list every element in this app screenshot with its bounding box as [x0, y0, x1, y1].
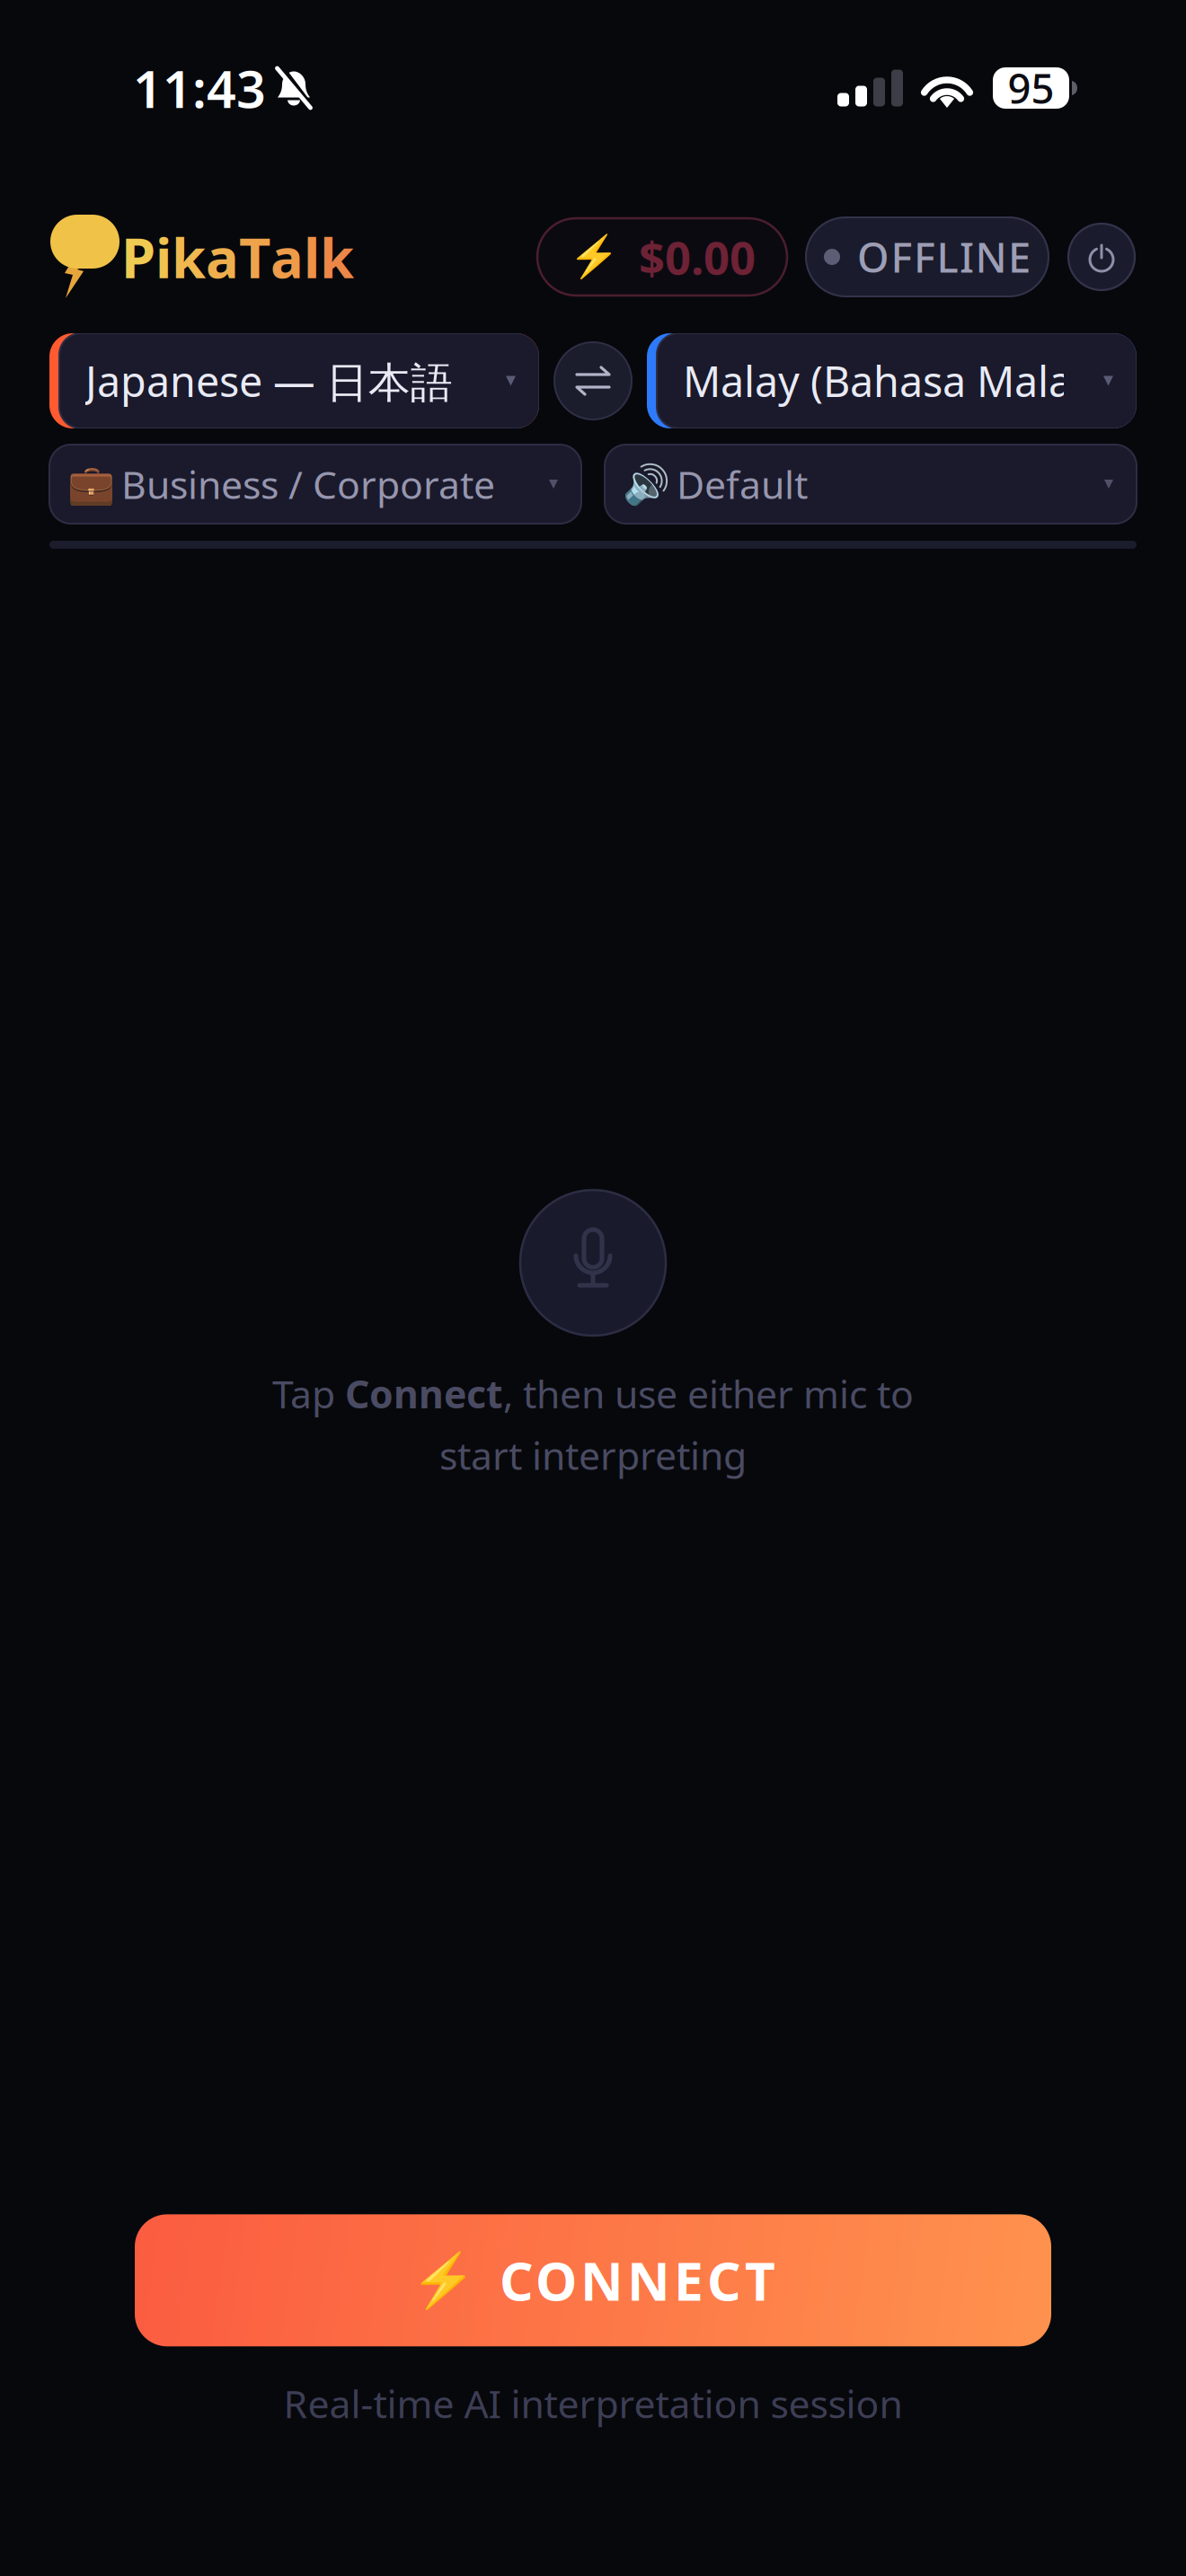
staticText: CONNECT: [500, 2245, 775, 2315]
staticText: Business / Corporate: [121, 459, 495, 510]
staticText: P: [121, 220, 155, 293]
staticText: k: [320, 220, 354, 293]
button[interactable]: Malay (Bahasa Malaysia): [647, 333, 1137, 428]
staticText: 🔊: [622, 462, 670, 506]
button[interactable]: OFFLINE: [806, 217, 1049, 296]
staticText: 11:43: [133, 54, 266, 122]
staticText: a: [206, 220, 239, 293]
button[interactable]: Japanese — 日本語: [49, 333, 539, 428]
staticText: a: [270, 220, 304, 293]
staticText: $0.00: [639, 227, 756, 287]
staticText: T: [239, 220, 270, 293]
staticText: l: [304, 220, 320, 293]
staticText: Real-time AI interpretation session: [283, 2378, 903, 2429]
staticText: i: [155, 220, 172, 293]
staticText: Malay (Bahasa Malaysia): [683, 353, 1160, 409]
button[interactable]: ⚡: [135, 2214, 1051, 2346]
button[interactable]: Swap languages: [553, 341, 633, 420]
staticText: k: [172, 220, 206, 293]
staticText: start interpreting: [439, 1430, 747, 1481]
staticText: Japanese — 日本語: [85, 353, 453, 409]
staticText: OFFLINE: [857, 230, 1031, 284]
staticText: 💼: [67, 462, 115, 506]
staticText: Default: [677, 459, 808, 510]
button[interactable]: ⚡: [537, 218, 787, 296]
button[interactable]: 🔊: [605, 445, 1137, 524]
staticText: ⚡: [411, 2250, 476, 2310]
staticText: 95: [1008, 61, 1054, 115]
button[interactable]: Power: [1067, 223, 1136, 291]
button[interactable]: 💼: [49, 445, 581, 524]
staticText: Tap Connect, then use either mic to: [272, 1368, 914, 1419]
staticText: ⚡: [569, 234, 619, 280]
